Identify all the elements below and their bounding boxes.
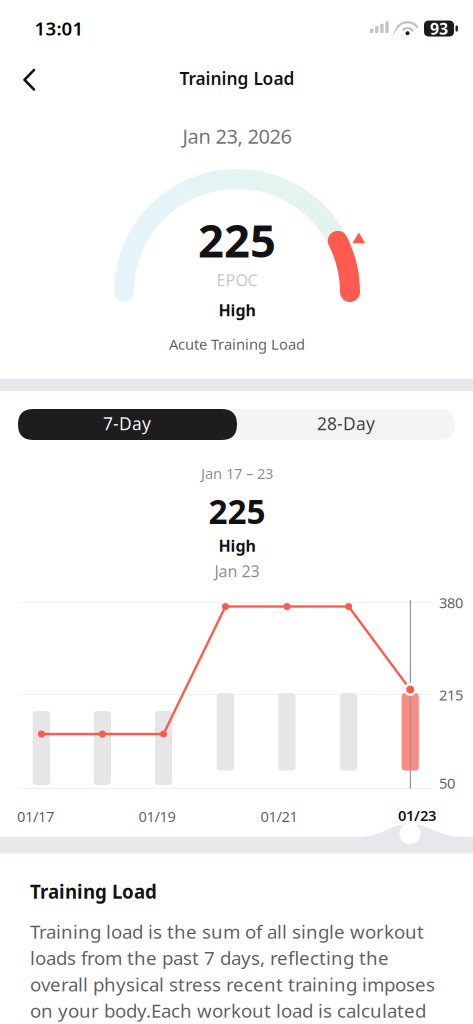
staticText: Jan 17 – 23 [201, 464, 273, 483]
staticText: Training load is the sum of all single w… [30, 919, 435, 1023]
staticText: 01/23 [398, 805, 436, 825]
staticText: 13:01 [34, 16, 83, 41]
staticText: High [218, 299, 255, 321]
staticText: 215 [439, 685, 463, 704]
staticText: Acute Training Load [169, 334, 305, 354]
staticText: 01/19 [138, 806, 175, 826]
button[interactable]: 28-Day [0, 0, 473, 1024]
staticText: 01/21 [260, 806, 297, 826]
staticText: 50 [439, 773, 455, 793]
staticText: Jan 23, 2026 [182, 123, 291, 149]
button[interactable]: Back [0, 0, 473, 1024]
staticText: EPOC [216, 269, 257, 291]
staticText: 225 [198, 210, 276, 270]
staticText: 28-Day [317, 412, 375, 435]
staticText: Training Load [179, 67, 294, 90]
staticText: 7-Day [103, 412, 151, 435]
staticText: 225 [208, 489, 265, 533]
staticText: 380 [439, 593, 463, 612]
button[interactable]: 7-Day [0, 0, 473, 1024]
staticText: Training Load [30, 879, 157, 904]
staticText: High [218, 535, 255, 556]
staticText: 01/17 [17, 806, 54, 826]
staticText: 93 [430, 18, 448, 39]
staticText: Jan 23 [214, 560, 259, 582]
